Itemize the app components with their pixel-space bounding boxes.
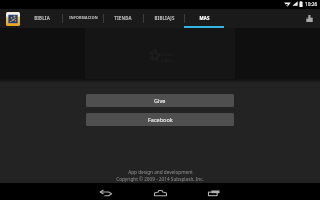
staticText: MAS (199, 15, 210, 21)
staticText: App design and development (128, 169, 193, 175)
button[interactable]: Download (303, 13, 314, 24)
staticText: Copyright © 2009 - 2014 Subsplash, Inc. (116, 176, 204, 182)
button[interactable]: BIBLIAJS (144, 9, 184, 28)
staticText: BIBLIAJS (154, 15, 175, 21)
button[interactable]: INFORMACION (63, 9, 103, 28)
staticText: BIBLIA (34, 15, 50, 21)
staticText: TIENDA (114, 15, 132, 21)
button[interactable]: Facebook (86, 113, 234, 126)
staticText: 10:26 (305, 1, 318, 8)
button[interactable]: BIBLIA (22, 9, 62, 28)
button[interactable]: Back (91, 185, 121, 200)
button[interactable]: App icon (6, 12, 20, 26)
button[interactable]: Recent apps (199, 185, 229, 200)
button[interactable]: TIENDA (103, 9, 143, 28)
staticText: INFORMACION (69, 15, 98, 20)
button[interactable]: MAS (184, 9, 224, 28)
button[interactable]: Home (145, 185, 175, 200)
button[interactable]: Give (86, 94, 234, 107)
staticText: Facebook (148, 116, 173, 123)
staticText: Give (154, 97, 166, 104)
